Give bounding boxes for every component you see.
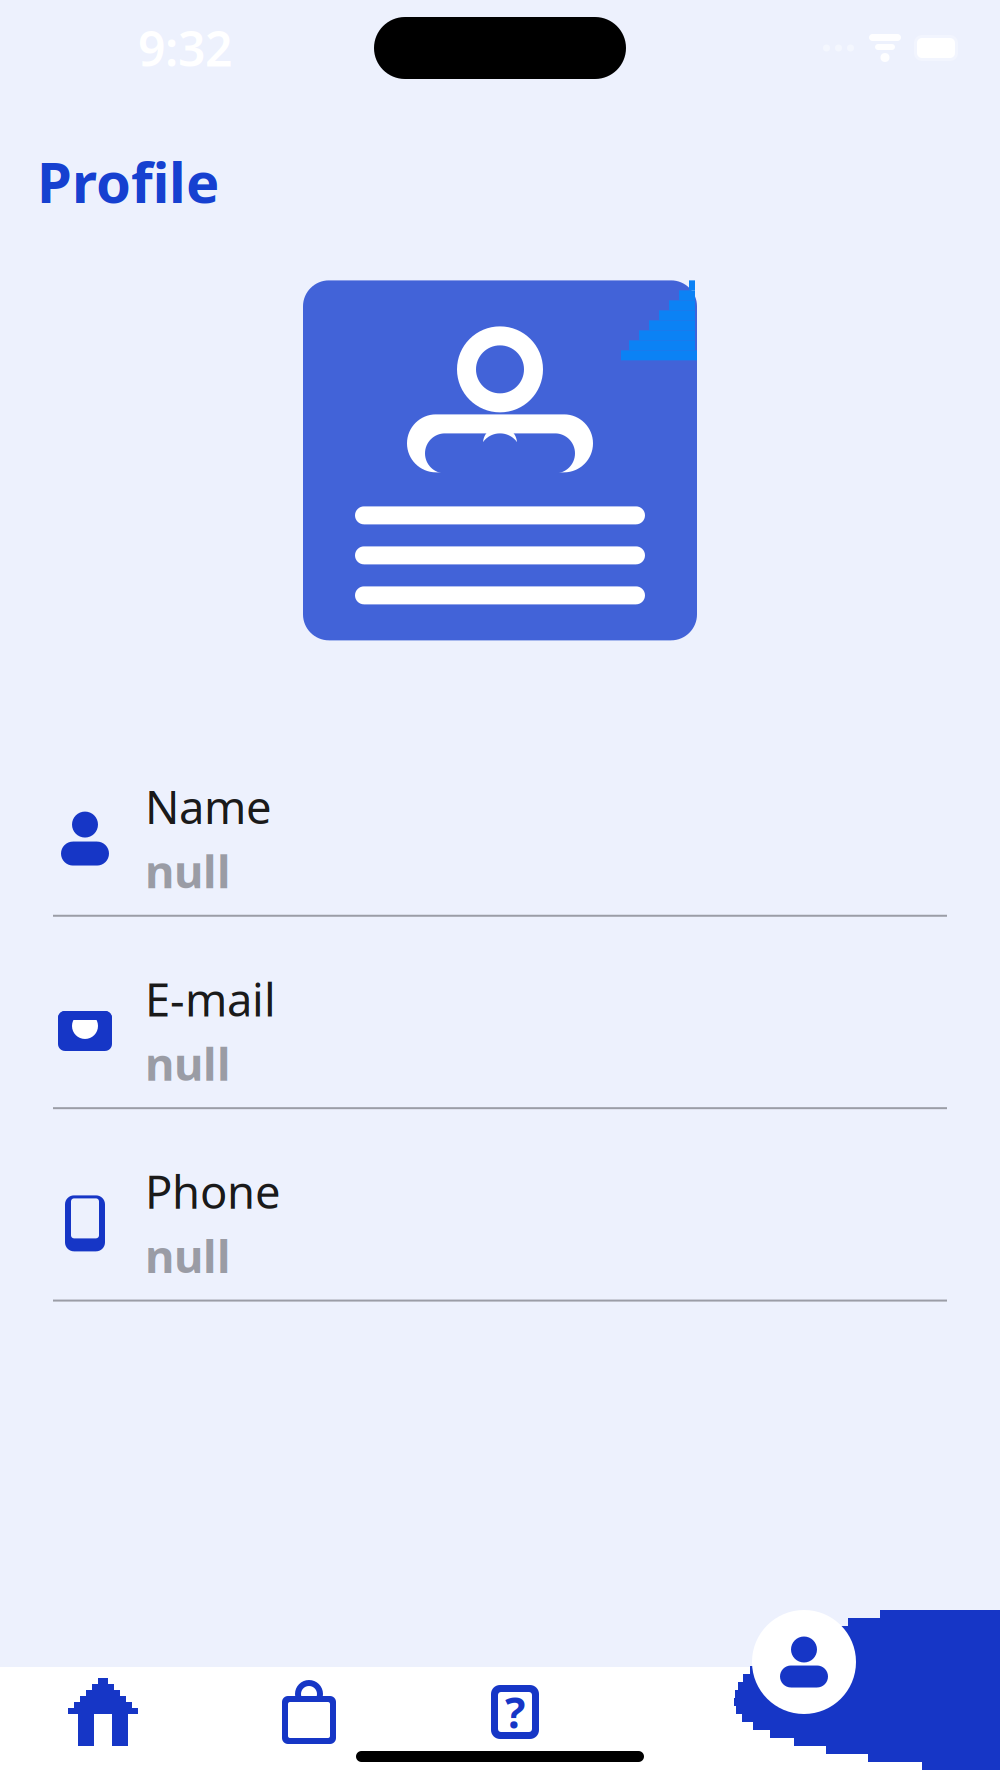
staticText: Name <box>145 776 272 837</box>
staticText: Profile <box>37 144 219 218</box>
button[interactable]: Help <box>412 1667 618 1757</box>
staticText: Phone <box>145 1161 281 1221</box>
button[interactable]: Shop <box>206 1667 412 1757</box>
button[interactable]: E-mail <box>0 969 1000 1109</box>
button[interactable]: Home <box>0 1667 206 1757</box>
button[interactable]: Phone <box>0 1161 1000 1302</box>
staticText: 9:32 <box>138 16 232 80</box>
staticText: null <box>145 1033 231 1093</box>
staticText: null <box>145 1225 231 1286</box>
staticText: null <box>145 841 231 901</box>
button[interactable]: Name <box>0 776 1000 917</box>
staticText: ? <box>505 1684 525 1740</box>
button[interactable]: Profile <box>794 1610 1000 1778</box>
staticText: E-mail <box>145 969 276 1029</box>
